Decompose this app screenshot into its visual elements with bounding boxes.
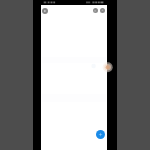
button[interactable]: Create [96,130,105,139]
button[interactable]: Search [100,8,105,13]
button[interactable]: Account [42,8,48,14]
button[interactable]: Cast [93,8,98,13]
